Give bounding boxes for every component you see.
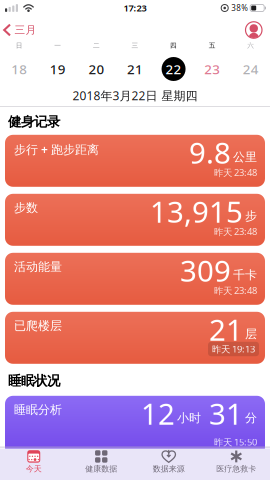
staticText: 小时 [177,410,201,425]
staticText: 数据来源 [153,464,185,474]
button[interactable]: 睡眠分析 [5,396,265,456]
staticText: 今天 [26,464,42,474]
button[interactable]: 24 [231,57,270,81]
staticText: 睡眠状况 [8,373,60,389]
staticText: 睡眠分析 [14,402,62,417]
staticText: 31 [209,394,243,433]
staticText: 18 [11,60,27,78]
button[interactable]: 今天 [0,450,67,474]
staticText: 三月 [14,23,36,36]
staticText: 一 [54,41,61,50]
staticText: 21 [127,60,143,78]
staticText: 五 [209,41,216,50]
staticText: 21 [209,310,243,349]
button[interactable]: 20 [77,57,116,81]
button[interactable]: 23 [193,57,231,81]
staticText: 2018年3月22日 星期四 [72,87,197,103]
button[interactable]: 三月 [0,23,36,36]
staticText: 四 [170,41,177,50]
staticText: 20 [88,60,104,78]
button[interactable]: 21 [116,57,154,81]
staticText: 健身记录 [8,114,60,130]
staticText: 健康数据 [85,464,117,474]
staticText: 昨天 15:50 [214,436,257,448]
staticText: 步行 + 跑步距离 [14,141,99,157]
staticText: 三 [131,41,138,50]
staticText: 六 [247,41,254,50]
staticText: 昨天 23:48 [214,166,257,179]
button[interactable]: 18 [0,57,39,81]
button[interactable]: 用户资料 [245,22,270,38]
staticText: 昨天 23:48 [214,284,257,297]
staticText: 二 [93,41,100,50]
staticText: 24 [243,60,259,78]
staticText: 已爬楼层 [14,318,62,333]
button[interactable]: 活动能量 [5,253,265,305]
staticText: 13,915 [150,192,243,231]
staticText: 日 [16,41,23,50]
button[interactable]: 22 [154,57,193,81]
button[interactable]: 医疗急救卡 [202,450,270,474]
button[interactable]: 数据来源 [135,450,202,474]
button[interactable]: 健康数据 [67,450,135,474]
staticText: 9.8 [189,133,231,172]
staticText: 活动能量 [14,259,62,274]
staticText: 层 [245,326,257,341]
staticText: 公里 [233,149,257,164]
staticText: 12 [141,394,175,433]
staticText: 昨天 23:48 [214,225,257,238]
staticText: 22 [166,60,182,78]
staticText: 17:23 [123,2,146,14]
button[interactable]: 步数 [5,194,265,246]
staticText: 分 [245,410,257,425]
button[interactable]: 19 [39,57,77,81]
staticText: 309 [180,251,231,290]
button[interactable]: 步行 + 跑步距离 [5,135,265,187]
staticText: 19 [50,60,66,78]
button[interactable]: 已爬楼层 [5,312,265,364]
staticText: 医疗急救卡 [216,464,256,474]
staticText: 38% [231,3,248,13]
staticText: 23 [204,60,220,78]
staticText: 昨天 19:13 [212,343,255,355]
staticText: 步数 [14,200,38,215]
staticText: 千卡 [233,267,257,282]
staticText: 步 [245,208,257,223]
